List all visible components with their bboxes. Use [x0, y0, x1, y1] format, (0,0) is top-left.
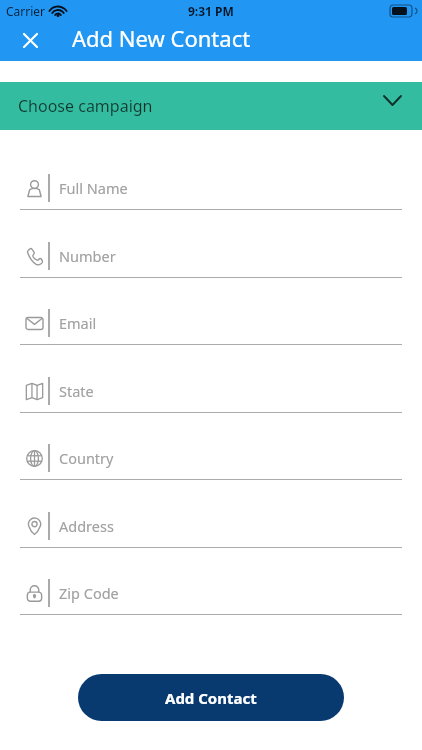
staticText: Country: [59, 448, 114, 468]
staticText: State: [59, 381, 94, 401]
button[interactable]: Choose campaign: [0, 82, 422, 130]
staticText: 9:31 PM: [188, 3, 234, 19]
staticText: Carrier: [6, 3, 46, 19]
staticText: Full Name: [59, 178, 128, 198]
staticText: Choose campaign: [18, 95, 153, 117]
staticText: Add Contact: [165, 688, 257, 708]
button[interactable]: Full Name: [0, 143, 422, 210]
staticText: Zip Code: [59, 583, 119, 603]
staticText: Address: [59, 516, 114, 536]
button[interactable]: Country: [0, 413, 422, 480]
staticText: Email: [59, 313, 97, 333]
staticText: Number: [59, 246, 116, 266]
button[interactable]: State: [0, 345, 422, 413]
button[interactable]: Address: [0, 480, 422, 548]
button[interactable]: Number: [0, 210, 422, 278]
staticText: Add New Contact: [72, 23, 251, 53]
button[interactable]: Email: [0, 278, 422, 345]
button[interactable]: [8, 21, 52, 60]
button[interactable]: Add Contact: [78, 674, 344, 721]
button[interactable]: Zip Code: [0, 548, 422, 615]
